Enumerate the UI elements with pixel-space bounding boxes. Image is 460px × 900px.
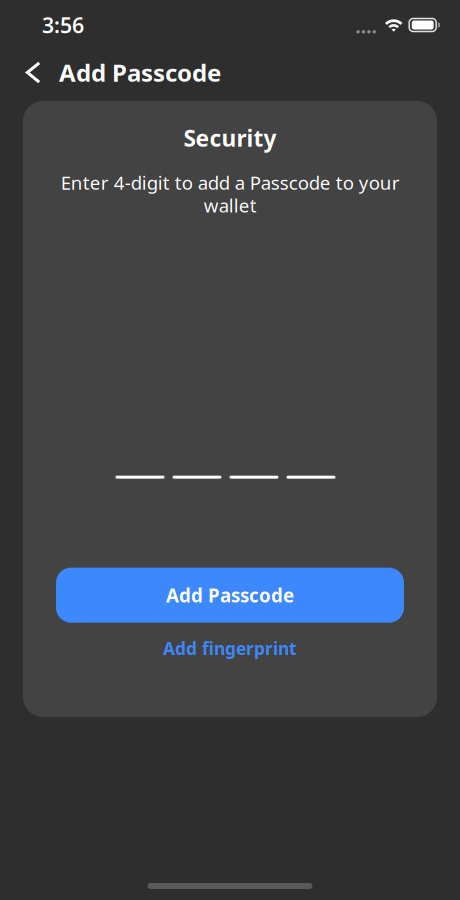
button[interactable]: Add fingerprint: [147, 623, 313, 668]
staticText: Security: [183, 123, 276, 153]
staticText: Add Passcode: [166, 583, 294, 608]
staticText: Enter 4-digit to add a Passcode to your …: [60, 170, 399, 218]
staticText: 3:56: [42, 11, 84, 39]
button[interactable]: Add Passcode: [56, 568, 404, 623]
staticText: Add fingerprint: [163, 637, 297, 660]
staticText: Add Passcode: [59, 57, 221, 88]
button[interactable]: Back: [13, 54, 49, 94]
